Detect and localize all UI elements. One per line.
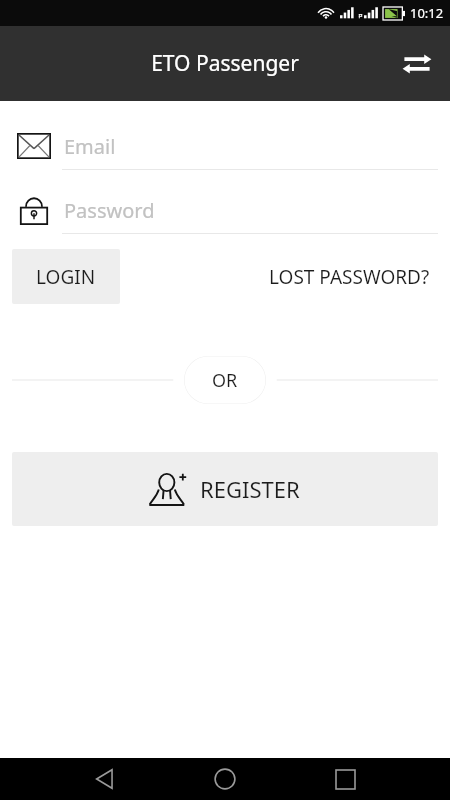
button[interactable]: Switch mode xyxy=(394,41,440,87)
staticText: OR xyxy=(212,368,238,393)
staticText: LOST PASSWORD? xyxy=(269,264,430,290)
staticText: ETO Passenger xyxy=(151,49,299,78)
staticText: Email xyxy=(64,133,116,160)
button[interactable]: LOGIN xyxy=(12,249,120,304)
staticText: Password xyxy=(64,197,155,224)
staticText: REGISTER xyxy=(200,474,300,504)
button[interactable]: LOST PASSWORD? xyxy=(261,254,438,300)
button[interactable]: Password xyxy=(0,187,450,233)
button[interactable]: REGISTER xyxy=(12,452,438,526)
button[interactable]: Email xyxy=(0,123,450,169)
staticText: 10:12 xyxy=(410,4,444,22)
staticText: LOGIN xyxy=(36,264,96,290)
button[interactable]: Recent apps xyxy=(319,758,371,800)
button[interactable]: Home xyxy=(199,758,251,800)
button[interactable]: Back xyxy=(79,758,131,800)
